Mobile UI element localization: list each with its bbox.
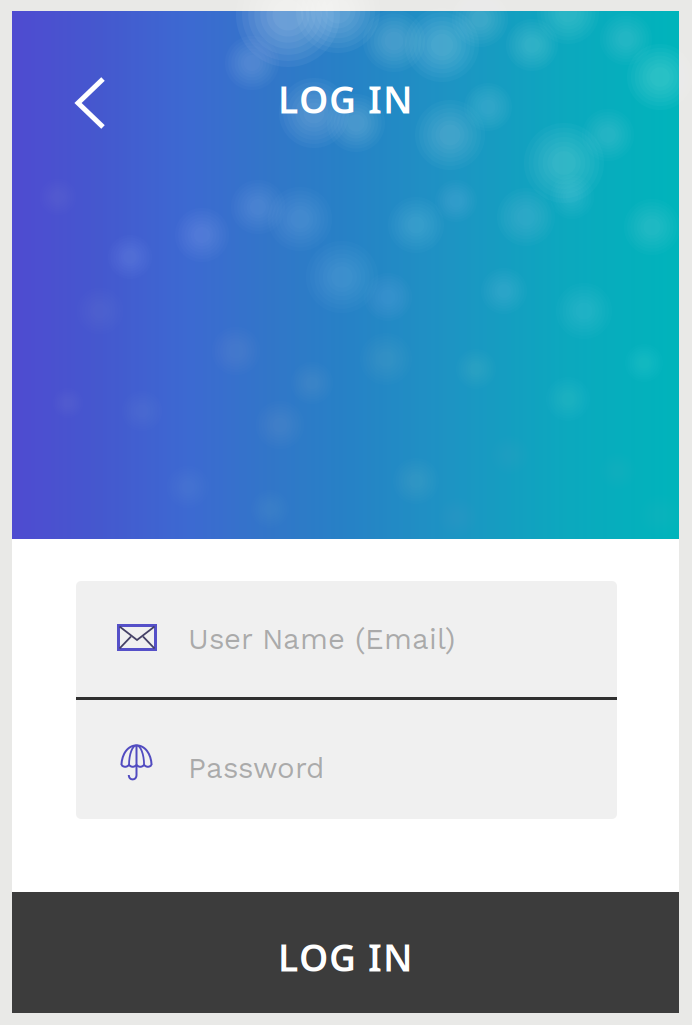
- button[interactable]: Back: [54, 66, 128, 140]
- button[interactable]: LOG IN: [12, 892, 679, 1013]
- staticText: Password: [188, 751, 324, 785]
- staticText: LOG IN: [278, 932, 413, 982]
- staticText: User Name (Email): [188, 622, 455, 656]
- staticText: LOG IN: [278, 74, 413, 124]
